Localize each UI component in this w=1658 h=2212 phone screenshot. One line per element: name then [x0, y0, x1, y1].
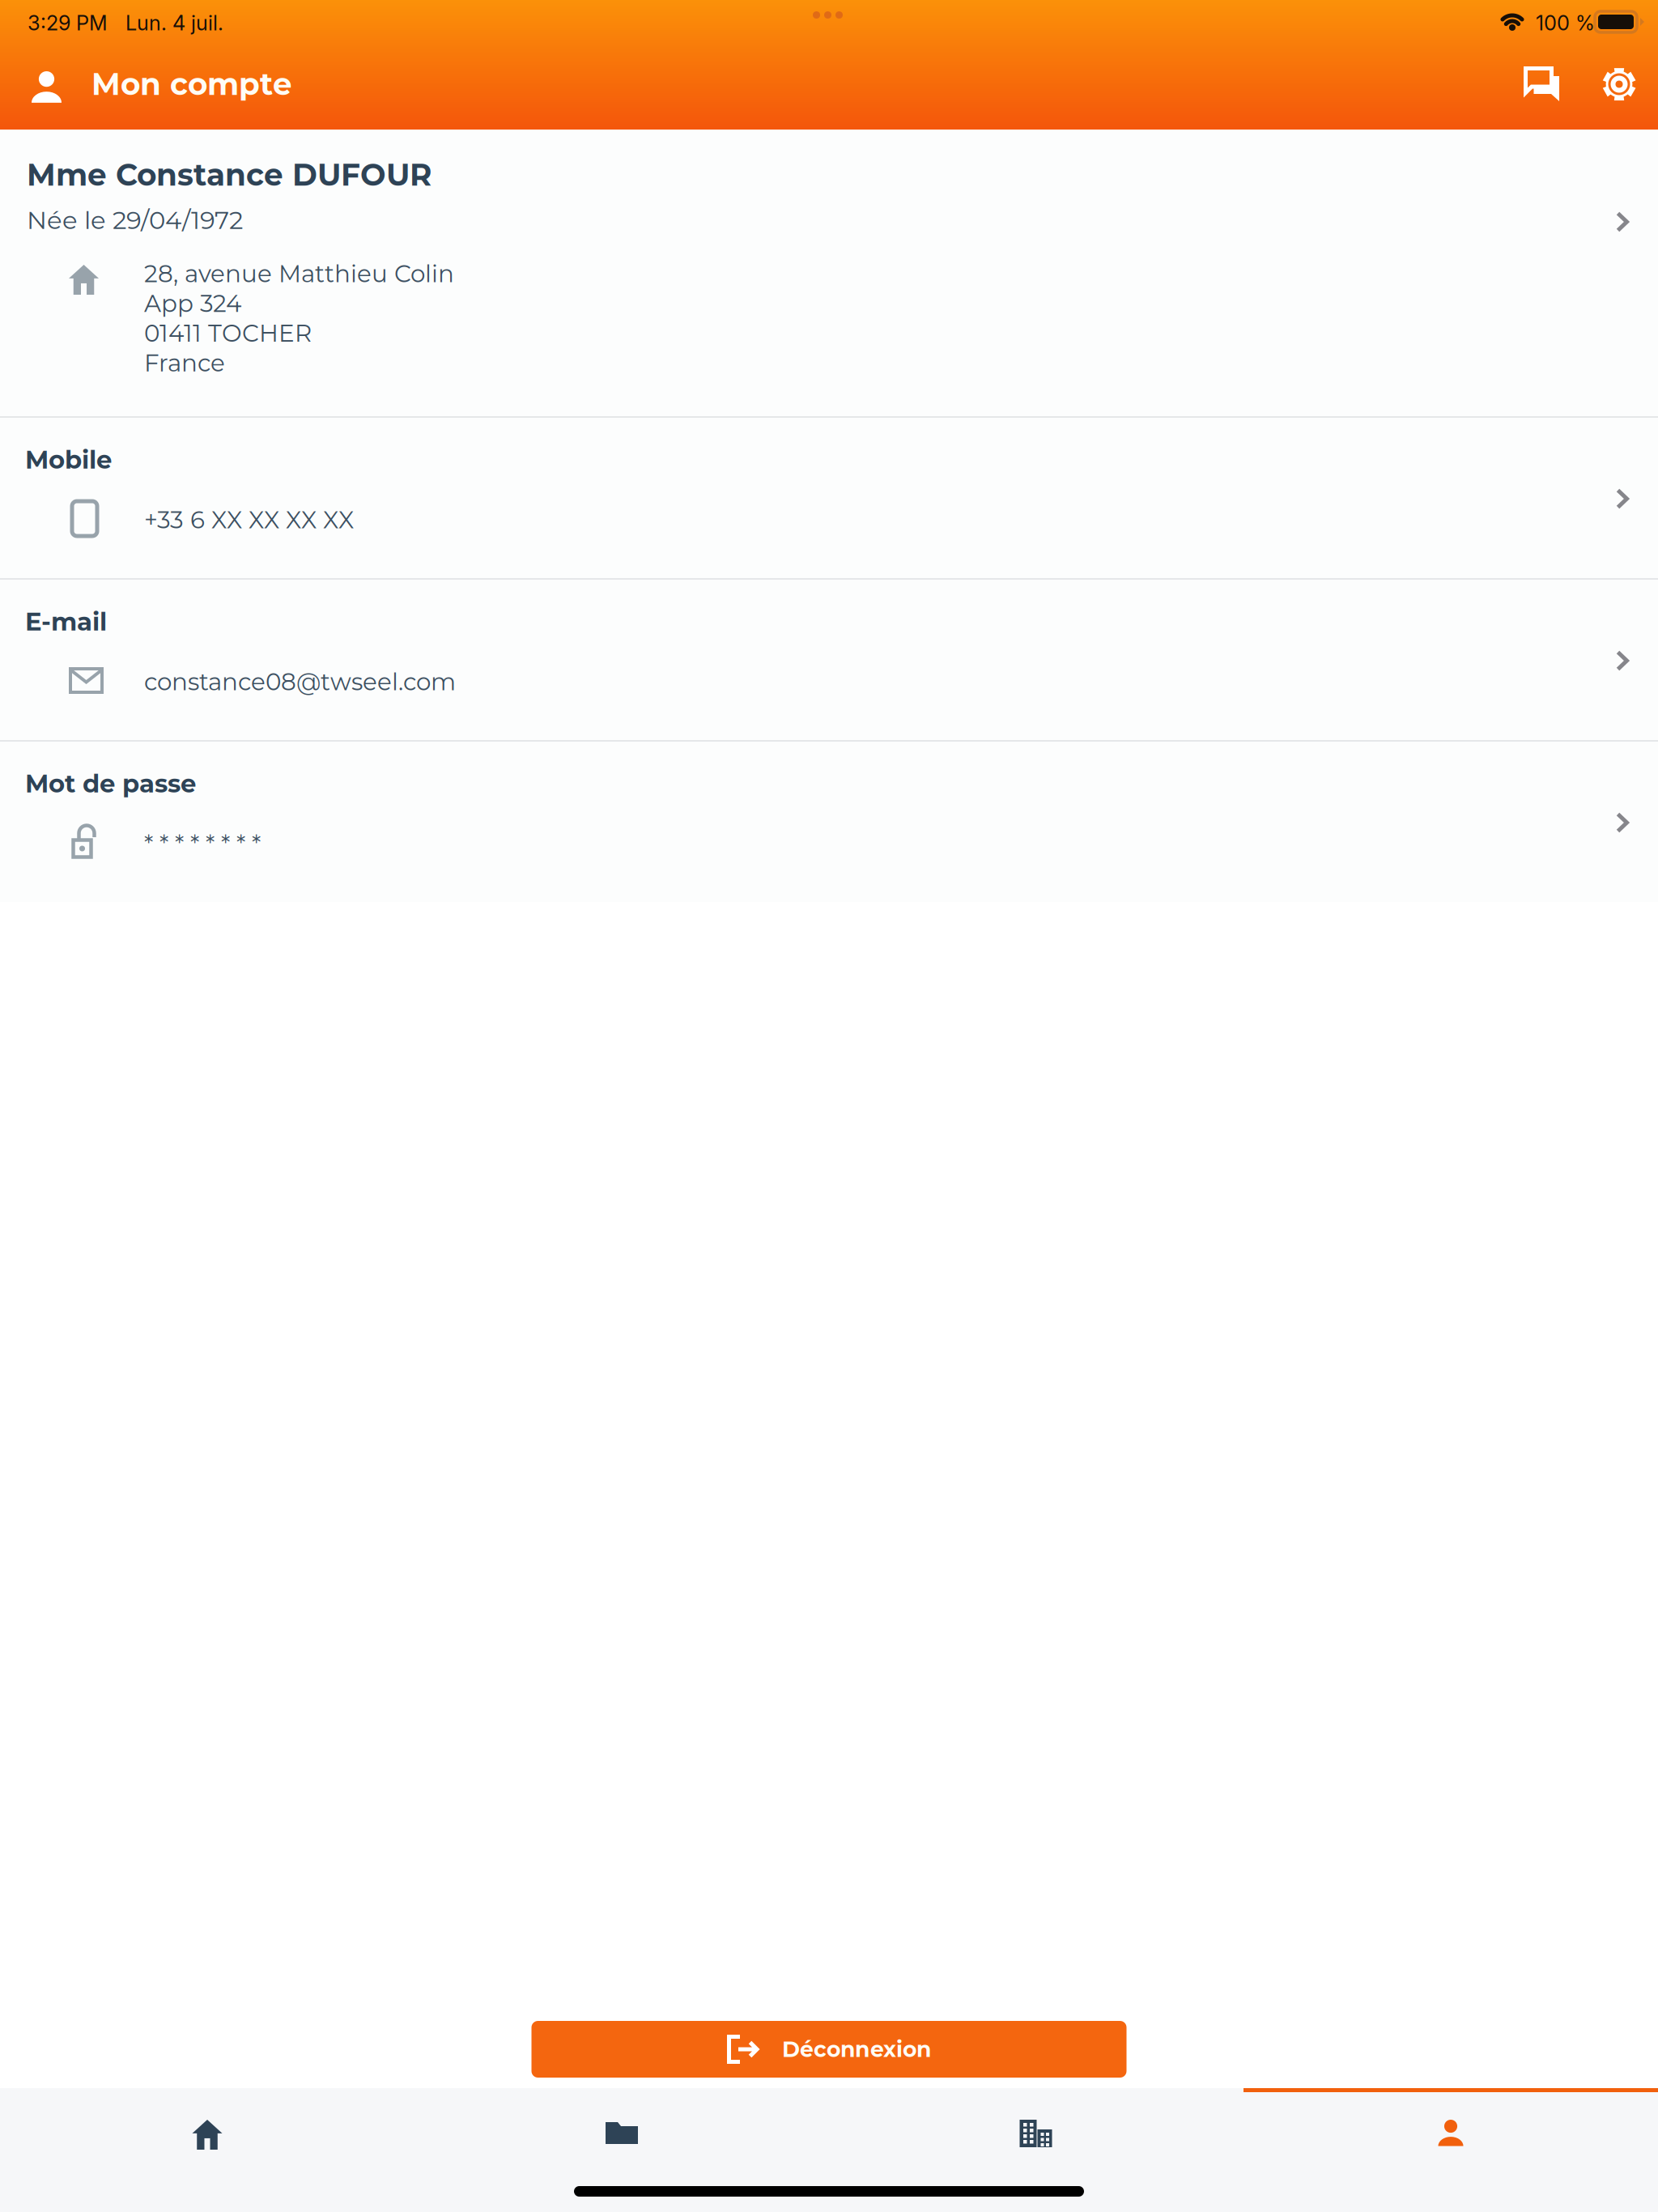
staticText: E-mail: [25, 606, 107, 637]
staticText: 100 %: [1536, 11, 1595, 35]
button[interactable]: Messagerie: [1503, 53, 1577, 119]
button[interactable]: Profil: [0, 53, 74, 119]
button[interactable]: Mon compte: [1243, 2088, 1658, 2212]
staticText: * * * * * * * *: [144, 829, 261, 858]
button[interactable]: Mobile: [0, 418, 1658, 578]
staticText: Lun. 4 juil.: [125, 11, 223, 35]
staticText: Mme Constance DUFOUR: [27, 156, 432, 193]
button[interactable]: E-mail: [0, 580, 1658, 740]
staticText: +33 6 XX XX XX XX: [144, 505, 354, 534]
button[interactable]: Réglages: [1585, 53, 1652, 119]
staticText: Mobile: [25, 445, 112, 475]
staticText: 3:29 PM: [28, 11, 108, 35]
staticText: constance08@twseel.com: [144, 667, 456, 696]
staticText: Née le 29/04/1972: [27, 205, 243, 235]
button[interactable]: Documents: [414, 2088, 829, 2212]
button[interactable]: Agences: [829, 2088, 1243, 2212]
staticText: 28, avenue Matthieu Colin App 324 01411 …: [144, 259, 454, 377]
staticText: Mon compte: [91, 66, 292, 102]
staticText: Déconnexion: [782, 2036, 931, 2062]
button[interactable]: Mme Constance DUFOUR: [0, 130, 1658, 416]
button[interactable]: Accueil: [0, 2088, 414, 2212]
staticText: Mot de passe: [25, 768, 196, 799]
button[interactable]: Mot de passe: [0, 742, 1658, 902]
button[interactable]: Déconnexion: [531, 2021, 1127, 2078]
